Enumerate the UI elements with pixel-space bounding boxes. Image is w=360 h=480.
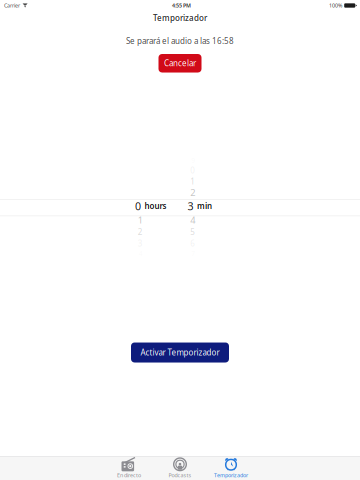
staticText: 100% — [329, 2, 342, 9]
staticText: Temporizador — [153, 13, 207, 23]
staticText: 5 — [190, 227, 195, 237]
staticText: 4:55 PM — [172, 2, 191, 9]
staticText: 1 — [190, 176, 195, 187]
staticText: hours — [144, 201, 166, 211]
staticText: min — [197, 201, 212, 211]
staticText: 0 — [135, 199, 141, 213]
staticText: Carrier — [4, 2, 20, 9]
staticText: Se parará el audio a las 16:58 — [126, 36, 234, 46]
staticText: 3 — [138, 238, 143, 249]
staticText: Activar Temporizador — [140, 347, 219, 358]
staticText: En directo — [117, 472, 141, 479]
staticText: 6 — [190, 238, 195, 249]
staticText: Temporizador — [214, 472, 248, 479]
staticText: 2 — [190, 186, 195, 199]
button[interactable]: Podcasts — [157, 456, 203, 479]
staticText: 2 — [138, 227, 143, 237]
staticText: 0 — [190, 165, 195, 176]
staticText: Podcasts — [168, 472, 191, 479]
button[interactable]: Cancelar — [158, 54, 201, 72]
staticText: 3 — [187, 199, 193, 213]
button[interactable]: En directo — [106, 456, 152, 479]
staticText: 4 — [190, 214, 195, 226]
button[interactable]: Temporizador — [208, 456, 254, 479]
staticText: Cancelar — [164, 58, 196, 68]
staticText: 1 — [138, 214, 143, 226]
button[interactable]: Activar Temporizador — [131, 342, 229, 362]
